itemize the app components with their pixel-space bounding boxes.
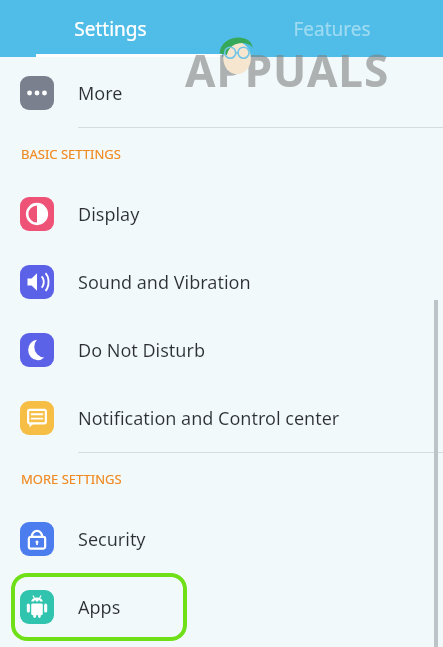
staticText: Display [78, 202, 140, 227]
button[interactable]: Security [0, 505, 443, 573]
staticText: Sound and Vibration [78, 270, 251, 295]
staticText: Security [78, 527, 146, 552]
staticText: MORE SETTINGS [21, 470, 122, 488]
staticText: Settings [74, 16, 147, 42]
button[interactable]: Features [221, 0, 443, 57]
button[interactable]: Sound and Vibration [0, 248, 443, 316]
staticText: BASIC SETTINGS [21, 145, 121, 163]
staticText: Notification and Control center [78, 406, 340, 431]
button[interactable]: Notification and Control center [0, 384, 443, 452]
button[interactable]: Do Not Disturb [0, 316, 443, 384]
button[interactable]: Apps [0, 573, 443, 641]
button[interactable]: Display [0, 180, 443, 248]
button[interactable]: Settings [0, 0, 221, 57]
button[interactable]: More [0, 59, 443, 127]
staticText: Features [293, 16, 371, 42]
staticText: Do Not Disturb [78, 338, 205, 363]
staticText: More [78, 81, 123, 106]
staticText: APPUALS [185, 40, 390, 100]
staticText: Apps [78, 595, 121, 620]
